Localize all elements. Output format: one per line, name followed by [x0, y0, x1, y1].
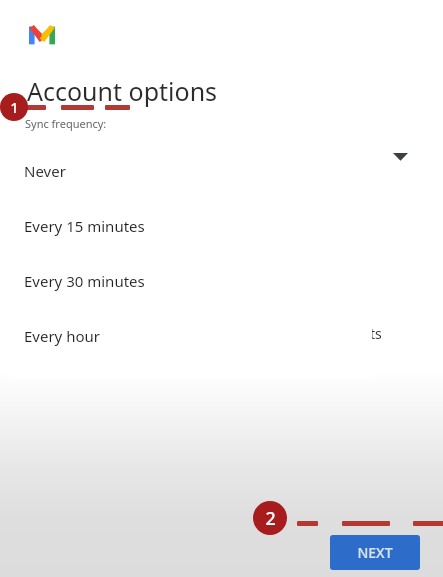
- staticText: Every hour: [24, 326, 100, 346]
- button[interactable]: NEXT: [330, 535, 420, 570]
- button[interactable]: Every 30 minutes: [11, 253, 372, 308]
- staticText: Account options: [27, 74, 218, 108]
- staticText: 1: [10, 97, 19, 117]
- staticText: Never: [24, 161, 66, 181]
- staticText: Sync frequency:: [25, 116, 107, 131]
- button[interactable]: Never: [11, 143, 372, 198]
- staticText: 2: [265, 506, 276, 530]
- button[interactable]: Every 15 minutes: [11, 198, 372, 253]
- other: Open sync frequency list: [393, 153, 408, 163]
- staticText: Every 15 minutes: [24, 216, 145, 236]
- staticText: Every 30 minutes: [24, 271, 145, 291]
- staticText: ts: [370, 324, 382, 343]
- staticText: NEXT: [357, 543, 393, 562]
- button[interactable]: Every hour: [11, 308, 372, 363]
